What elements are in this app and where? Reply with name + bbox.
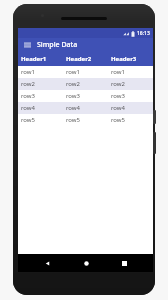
staticText: row3 [66,92,81,100]
button[interactable]: row2 [18,78,153,90]
staticText: row4 [21,104,36,112]
staticText: Header2 [66,55,92,63]
button[interactable]: Back [37,254,57,272]
button[interactable]: row1 [18,66,153,78]
staticText: row2 [66,80,81,88]
staticText: 16:13 [137,30,150,37]
button[interactable]: row3 [18,90,153,102]
button[interactable]: row5 [18,114,153,126]
staticText: row4 [111,104,126,112]
staticText: row2 [111,80,126,88]
staticText: row3 [21,92,36,100]
button[interactable]: Header1 [18,52,153,66]
staticText: row2 [21,80,36,88]
staticText: row5 [66,116,81,124]
button[interactable]: Home [76,254,96,272]
button[interactable]: Recent apps [114,254,134,272]
staticText: row3 [111,92,126,100]
button[interactable]: Open navigation menu [21,39,33,51]
staticText: row1 [21,68,36,76]
staticText: Header3 [111,55,137,63]
staticText: row1 [66,68,81,76]
staticText: Header1 [21,55,47,63]
button[interactable]: row4 [18,102,153,114]
staticText: row1 [111,68,126,76]
staticText: Simple Data [37,40,78,50]
staticText: row4 [66,104,81,112]
staticText: row5 [111,116,126,124]
staticText: row5 [21,116,36,124]
